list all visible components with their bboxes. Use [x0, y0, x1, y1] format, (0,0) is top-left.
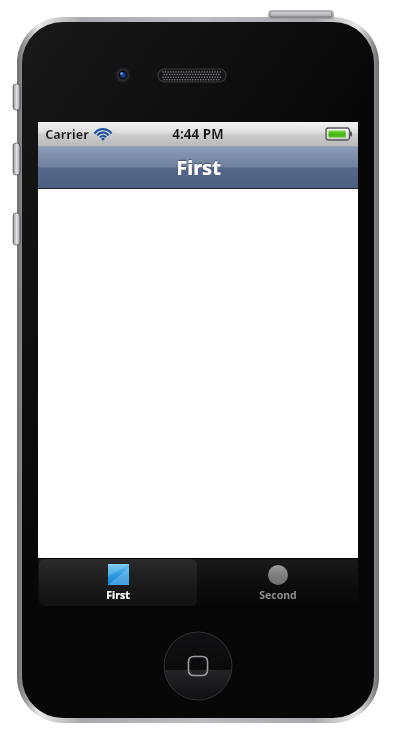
staticText: First [106, 588, 130, 602]
staticText: First [176, 154, 221, 181]
staticText: Carrier [45, 126, 89, 143]
staticText: 4:44 PM [172, 125, 224, 143]
staticText: Second [259, 588, 297, 602]
button[interactable]: Second [198, 558, 358, 608]
button[interactable]: First [39, 559, 197, 606]
